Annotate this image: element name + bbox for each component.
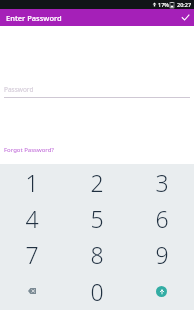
staticText: 2 — [90, 167, 104, 198]
button[interactable]: Forgot Password? — [0, 145, 58, 155]
staticText: 6 — [155, 203, 169, 234]
staticText: 0 — [90, 276, 104, 307]
staticText: 9 — [155, 239, 169, 270]
button[interactable]: 7 — [0, 236, 64, 272]
staticText: 1 — [25, 167, 39, 198]
button[interactable]: Backspace — [0, 272, 64, 310]
staticText: 17% — [158, 1, 169, 8]
staticText: Forgot Password? — [4, 146, 54, 154]
button[interactable]: 0 — [64, 272, 129, 310]
button[interactable]: Confirm password — [177, 9, 194, 26]
staticText: 4 — [25, 203, 39, 234]
staticText: 20:27 — [177, 1, 192, 8]
staticText: 8 — [90, 239, 104, 270]
button[interactable]: 5 — [64, 200, 129, 236]
button[interactable]: 3 — [129, 164, 194, 200]
button[interactable]: Password — [0, 85, 194, 98]
staticText: Password — [4, 85, 34, 94]
button[interactable]: 6 — [129, 200, 194, 236]
staticText: 3 — [155, 167, 169, 198]
staticText: 7 — [25, 239, 39, 270]
button[interactable]: 1 — [0, 164, 64, 200]
button[interactable]: 9 — [129, 236, 194, 272]
button[interactable]: 8 — [64, 236, 129, 272]
staticText: 5 — [90, 203, 104, 234]
button[interactable]: 2 — [64, 164, 129, 200]
button[interactable]: 4 — [0, 200, 64, 236]
button[interactable]: Enter — [129, 272, 194, 310]
staticText: Enter Password — [6, 13, 62, 23]
